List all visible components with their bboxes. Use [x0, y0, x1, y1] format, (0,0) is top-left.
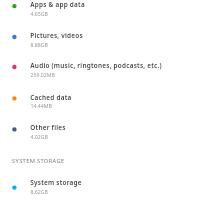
button[interactable] — [0, 57, 200, 85]
button[interactable] — [0, 173, 200, 200]
button[interactable] — [0, 119, 200, 147]
button[interactable] — [0, 26, 200, 54]
button[interactable] — [0, 0, 200, 22]
button[interactable] — [0, 88, 200, 116]
